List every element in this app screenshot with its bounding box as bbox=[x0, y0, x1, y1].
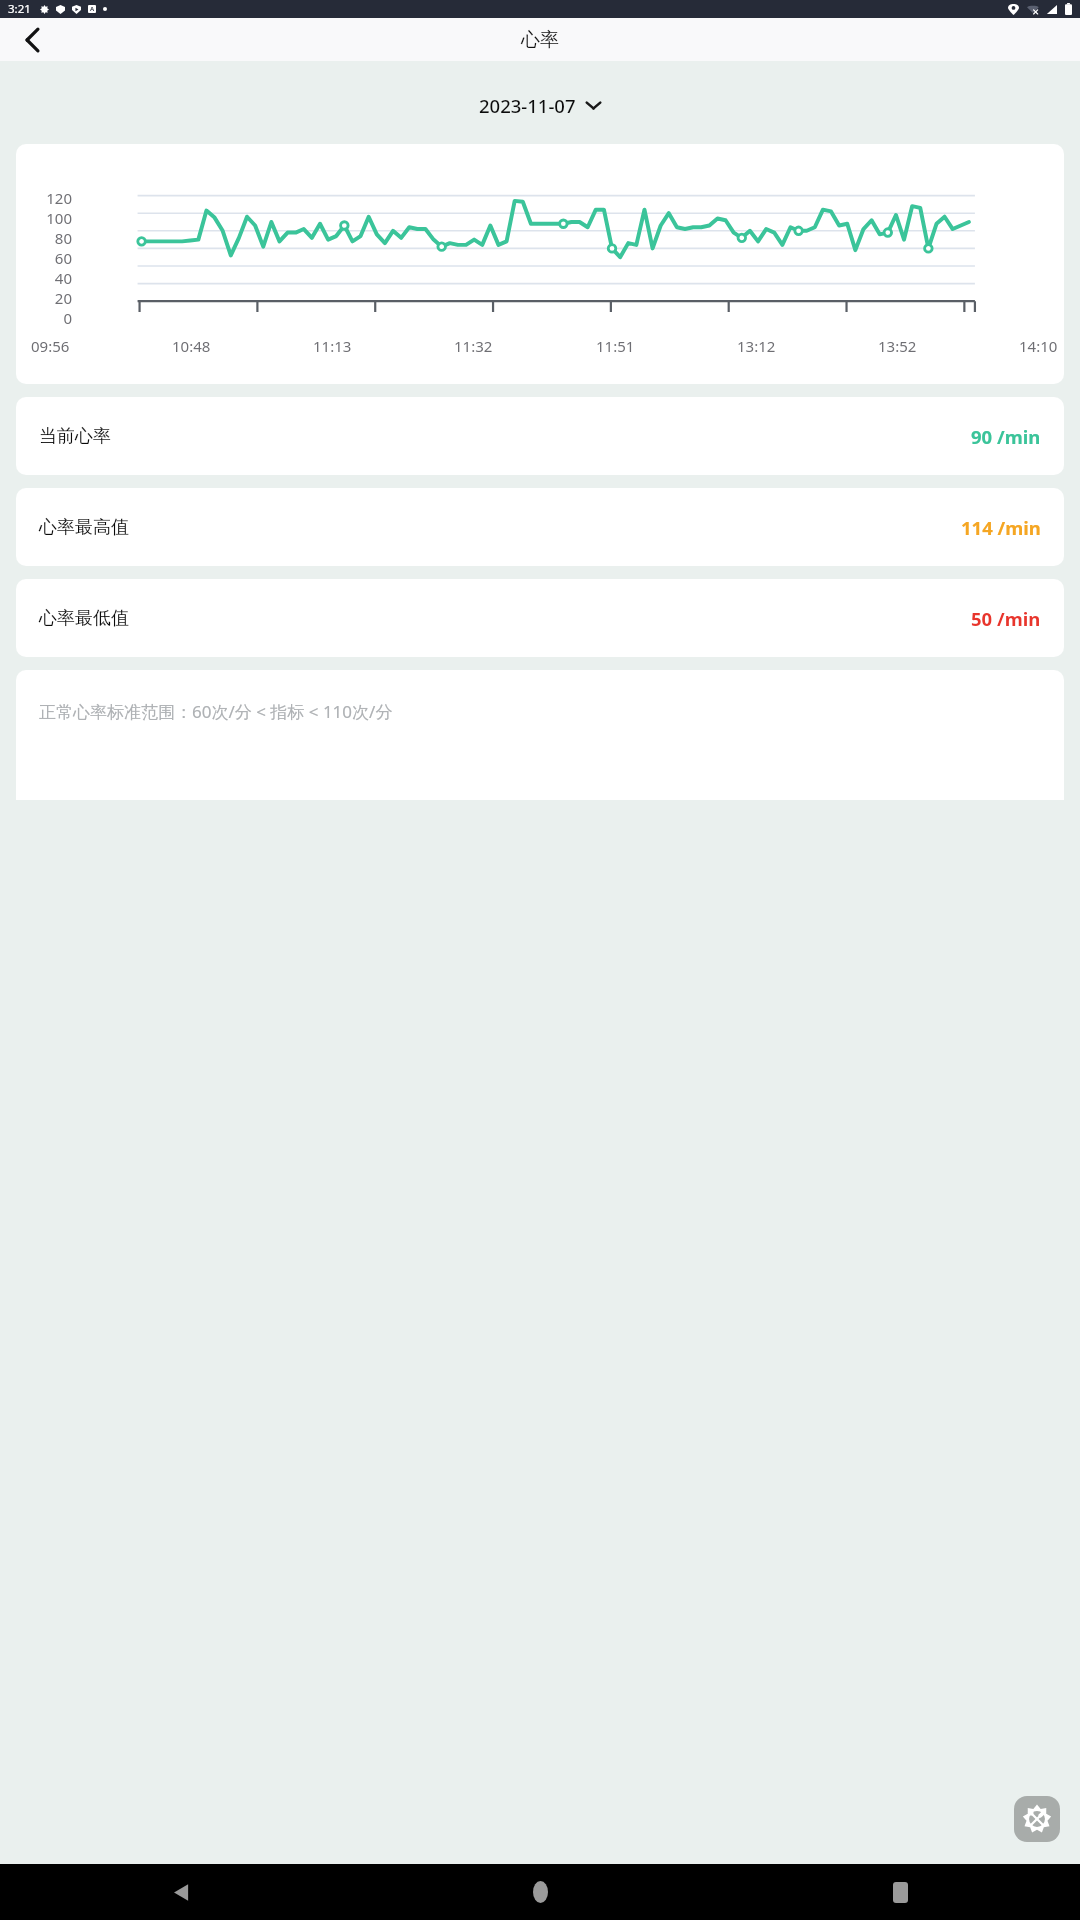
button[interactable]: Settings tools bbox=[1014, 1796, 1060, 1842]
staticText: 14:10 bbox=[1019, 336, 1058, 356]
staticText: 心率最低值 bbox=[39, 607, 129, 630]
button[interactable]: 心率最低值 bbox=[16, 579, 1064, 657]
button[interactable]: Back bbox=[10, 18, 54, 61]
staticText: 90 /min bbox=[971, 424, 1041, 449]
staticText: 50 /min bbox=[971, 606, 1041, 631]
staticText: 10:48 bbox=[172, 336, 211, 356]
staticText: 当前心率 bbox=[39, 425, 111, 448]
staticText: 正常心率标准范围：60次/分 < 指标 < 110次/分 bbox=[39, 700, 393, 723]
button[interactable]: 120 bbox=[16, 144, 1064, 384]
staticText: 100 bbox=[46, 208, 72, 228]
button[interactable]: Back bbox=[0, 1864, 360, 1920]
button[interactable]: Recent apps bbox=[720, 1864, 1080, 1920]
staticText: 80 bbox=[54, 228, 72, 248]
staticText: 心率最高值 bbox=[39, 516, 129, 539]
staticText: 60 bbox=[54, 248, 72, 268]
button[interactable]: 2023-11-07 bbox=[469, 89, 611, 122]
staticText: 20 bbox=[54, 288, 72, 308]
staticText: 114 /min bbox=[961, 515, 1041, 540]
staticText: A bbox=[90, 5, 95, 13]
button[interactable]: 当前心率 bbox=[16, 397, 1064, 475]
button[interactable]: 正常心率标准范围：60次/分 < 指标 < 110次/分 bbox=[16, 670, 1064, 800]
staticText: 120 bbox=[46, 188, 72, 208]
staticText: 2023-11-07 bbox=[479, 93, 576, 118]
staticText: 11:13 bbox=[313, 336, 352, 356]
button[interactable]: 心率最高值 bbox=[16, 488, 1064, 566]
button[interactable]: Home bbox=[360, 1864, 720, 1920]
staticText: 0 bbox=[63, 308, 72, 328]
staticText: 13:52 bbox=[878, 336, 917, 356]
staticText: 11:32 bbox=[454, 336, 493, 356]
staticText: 09:56 bbox=[31, 336, 70, 356]
staticText: 心率 bbox=[521, 28, 559, 52]
staticText: 13:12 bbox=[737, 336, 776, 356]
staticText: 11:51 bbox=[596, 336, 635, 356]
staticText: 3:21 bbox=[8, 1, 31, 17]
staticText: 40 bbox=[54, 268, 72, 288]
